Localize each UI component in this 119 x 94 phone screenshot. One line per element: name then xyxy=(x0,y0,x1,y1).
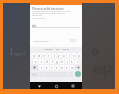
staticText: a xyxy=(35,60,37,64)
staticText: ?123 xyxy=(32,73,37,76)
button[interactable]: n xyxy=(65,65,69,70)
staticText: abc xyxy=(32,24,37,28)
staticText: i xyxy=(69,54,70,58)
button[interactable] xyxy=(31,65,38,70)
staticText: f xyxy=(52,60,53,64)
staticText: u xyxy=(63,54,65,58)
button[interactable]: i xyxy=(67,53,71,58)
staticText: g xyxy=(56,60,58,64)
staticText: b xyxy=(61,66,63,70)
staticText: device unless you verify that it is xyxy=(32,12,66,15)
button[interactable]: j xyxy=(65,59,69,64)
button[interactable]: k xyxy=(70,59,74,64)
button[interactable]: m xyxy=(70,65,74,70)
staticText: p xyxy=(78,54,80,58)
button[interactable]: x xyxy=(45,65,49,70)
button[interactable]: c xyxy=(50,65,54,70)
staticText: h xyxy=(61,60,63,64)
staticText: k xyxy=(71,60,73,64)
button[interactable]: e xyxy=(42,53,46,58)
button[interactable]: f xyxy=(50,59,54,64)
button[interactable]: w xyxy=(37,53,41,58)
staticText: r xyxy=(48,54,50,58)
button[interactable]: ?123 xyxy=(31,72,38,77)
staticText: j xyxy=(67,60,68,64)
button[interactable]: y xyxy=(57,53,61,58)
staticText: Please add account xyxy=(32,6,64,11)
button[interactable]: h xyxy=(60,59,64,64)
button[interactable]: g xyxy=(55,59,59,64)
button[interactable]: a xyxy=(33,59,38,64)
button[interactable]: v xyxy=(55,65,59,70)
staticText: x xyxy=(46,66,48,70)
button[interactable]: b xyxy=(60,65,64,70)
staticText: s xyxy=(41,60,43,64)
staticText: n xyxy=(66,66,68,70)
button[interactable]: q xyxy=(31,53,36,58)
staticText: l xyxy=(77,60,78,64)
staticText: Email address xyxy=(32,17,46,20)
button[interactable]: r xyxy=(47,53,51,58)
staticText: d xyxy=(46,60,48,64)
button[interactable]: z xyxy=(39,65,44,70)
button[interactable]: o xyxy=(72,53,76,58)
button[interactable]: Enter xyxy=(75,71,81,77)
staticText: w xyxy=(38,54,41,58)
button[interactable]: NEXT xyxy=(70,39,77,43)
staticText: Suggest · abc · about xyxy=(44,48,69,51)
button[interactable]: Recent apps xyxy=(70,83,76,89)
staticText: q xyxy=(33,54,35,58)
staticText: NEXT xyxy=(70,39,77,43)
staticText: y xyxy=(58,54,60,58)
staticText: Create account xyxy=(33,40,49,43)
button[interactable]: Back xyxy=(36,83,42,89)
staticText: You can not use your account on this xyxy=(32,10,70,13)
button[interactable]: p xyxy=(77,53,81,58)
button[interactable]: d xyxy=(45,59,49,64)
button[interactable]: s xyxy=(39,59,44,64)
button[interactable]: l xyxy=(75,59,79,64)
staticText: t xyxy=(54,54,55,58)
button[interactable]: Home xyxy=(53,83,59,89)
staticText: really you. xyxy=(32,14,43,17)
staticText: z xyxy=(41,66,43,70)
button[interactable]: Create account xyxy=(33,40,49,43)
staticText: o xyxy=(73,54,75,58)
staticText: c xyxy=(51,66,53,70)
staticText: m xyxy=(71,66,74,70)
staticText: e xyxy=(43,54,45,58)
button[interactable]: t xyxy=(52,53,56,58)
button[interactable]: u xyxy=(62,53,66,58)
staticText: v xyxy=(56,66,58,70)
staticText: Suggest xyxy=(10,51,26,56)
button[interactable] xyxy=(75,65,81,70)
